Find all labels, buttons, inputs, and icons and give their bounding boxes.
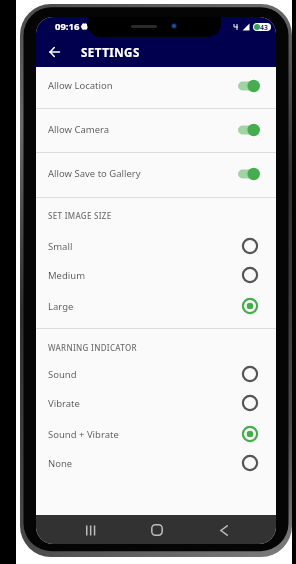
staticText: Small	[48, 240, 73, 253]
button[interactable]: Vibrate	[36, 388, 276, 418]
staticText: Vibrate	[48, 397, 80, 410]
staticText: Sound + Vibrate	[48, 428, 119, 441]
button[interactable]: None	[36, 448, 276, 478]
staticText: SET IMAGE SIZE	[48, 210, 112, 221]
staticText: 43	[260, 23, 269, 30]
staticText: SETTINGS	[81, 45, 140, 61]
staticText: Allow Camera	[48, 123, 110, 136]
staticText: WARNING INDICATOR	[48, 342, 137, 353]
staticText: None	[48, 457, 73, 470]
button[interactable]: Recent apps	[78, 517, 104, 543]
staticText: Medium	[48, 269, 86, 282]
staticText: Sound	[48, 368, 77, 381]
staticText: 09:16	[55, 20, 80, 33]
staticText: Allow Location	[48, 79, 113, 92]
button[interactable]: Small	[36, 231, 276, 261]
button[interactable]: Back	[41, 39, 67, 65]
button[interactable]: Allow Camera	[36, 107, 276, 152]
button[interactable]: Medium	[36, 260, 276, 290]
button[interactable]: Allow Location	[36, 63, 276, 108]
button[interactable]: Home	[144, 517, 170, 543]
button[interactable]: Sound + Vibrate	[36, 419, 276, 449]
staticText: Large	[48, 300, 74, 313]
button[interactable]: Sound	[36, 359, 276, 389]
staticText: Allow Save to Gallery	[48, 167, 141, 180]
button[interactable]: Large	[36, 291, 276, 321]
button[interactable]: Allow Save to Gallery	[36, 151, 276, 196]
button[interactable]: Back	[211, 517, 237, 543]
